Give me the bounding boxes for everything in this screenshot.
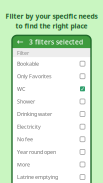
staticText: Year round open xyxy=(17,148,56,155)
staticText: Drinking water xyxy=(17,110,52,118)
staticText: Electricity xyxy=(17,123,41,130)
button[interactable]: Year round open xyxy=(12,146,91,158)
staticText: Only Favorites xyxy=(17,73,52,80)
staticText: More xyxy=(17,161,30,168)
button[interactable]: Bookable xyxy=(12,57,91,70)
staticText: 3 filters selected xyxy=(29,37,83,46)
staticText: Filter xyxy=(17,49,29,56)
staticText: Bookable xyxy=(17,60,39,67)
staticText: to find the right place xyxy=(15,21,87,30)
staticText: WC xyxy=(17,85,25,92)
button[interactable]: Electricity xyxy=(12,120,91,133)
button[interactable]: WC xyxy=(12,83,91,95)
button[interactable]: Drinking water xyxy=(12,108,91,120)
staticText: Shower xyxy=(17,98,35,105)
button[interactable]: Only Favorites xyxy=(12,70,91,83)
button[interactable]: ← xyxy=(12,35,91,48)
staticText: Filter by your specific needs xyxy=(5,12,97,20)
staticText: ✓ xyxy=(80,86,84,92)
button[interactable]: More xyxy=(12,158,91,171)
button[interactable]: Latrine emptying xyxy=(12,171,91,183)
button[interactable]: No fee xyxy=(12,133,91,146)
button[interactable]: Shower xyxy=(12,95,91,108)
staticText: No fee xyxy=(17,136,33,143)
staticText: ← xyxy=(17,37,24,46)
staticText: Latrine emptying xyxy=(17,173,58,181)
